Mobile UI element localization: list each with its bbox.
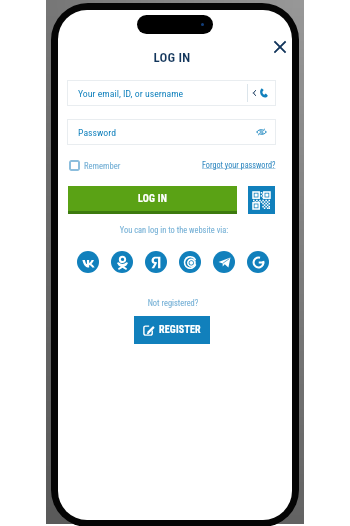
button[interactable]: Telegram — [213, 251, 235, 273]
staticText: Remember — [84, 161, 121, 171]
button[interactable]: Your email, ID, or username — [67, 80, 276, 106]
button[interactable]: QR code login — [248, 186, 275, 214]
staticText: Password — [78, 127, 117, 138]
staticText: You can log in to the website via: — [58, 225, 291, 235]
button[interactable]: Password — [67, 119, 276, 145]
staticText: REGISTER — [159, 324, 201, 336]
button[interactable]: Close — [267, 34, 292, 60]
button[interactable]: Google — [247, 251, 269, 273]
staticText: LOG IN — [58, 50, 289, 65]
button[interactable]: Odnoklassniki — [111, 251, 133, 273]
button[interactable]: Yandex — [145, 251, 167, 273]
button[interactable]: Forgot your password? — [202, 160, 276, 170]
button[interactable]: Mail — [179, 251, 201, 273]
button[interactable]: LOG IN — [68, 186, 237, 214]
staticText: Not registered? — [58, 298, 290, 308]
button[interactable]: REGISTER — [134, 316, 210, 344]
staticText: Your email, ID, or username — [78, 88, 184, 99]
button[interactable]: Remember — [69, 160, 121, 171]
staticText: LOG IN — [138, 193, 168, 205]
button[interactable]: VK — [77, 251, 99, 273]
